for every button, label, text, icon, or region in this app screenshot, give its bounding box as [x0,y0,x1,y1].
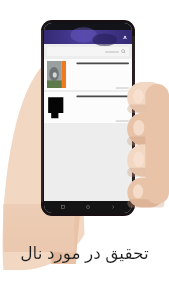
button[interactable]: Recents [57,201,69,213]
button[interactable] [44,59,132,90]
button[interactable]: Back [107,201,119,213]
button[interactable]: Menu [120,33,129,42]
staticText: تحقیق در مورد نال [20,241,149,264]
button[interactable] [47,47,129,56]
button[interactable]: Home [82,201,94,213]
button[interactable] [44,92,132,123]
